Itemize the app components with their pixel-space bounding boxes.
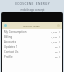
button[interactable]: Contact Us	[2, 49, 62, 54]
staticText: mobile app concept	[20, 8, 45, 12]
staticText: ECOSCENE ENERGY	[15, 2, 50, 6]
staticText: 56	[55, 45, 58, 48]
staticText: Accounts	[4, 40, 16, 44]
staticText: Monthly usage	[23, 24, 40, 27]
staticText: Updates 1	[4, 45, 18, 49]
staticText: My Consumption	[4, 30, 27, 34]
staticText: Contact Us	[4, 50, 19, 54]
staticText: 1,234	[51, 40, 58, 43]
staticText: Profile	[4, 55, 13, 59]
staticText: 1,234	[51, 30, 58, 33]
button[interactable]: Updates 1	[2, 44, 62, 49]
button[interactable]: Profile	[2, 54, 62, 59]
button[interactable]: Billing	[2, 34, 62, 39]
button[interactable]: Accounts	[2, 39, 62, 44]
staticText: 56	[55, 55, 58, 58]
staticText: Billing	[4, 35, 13, 39]
staticText: 56	[55, 50, 58, 53]
button[interactable]: My Consumption	[2, 29, 62, 34]
staticText: 1,234	[51, 35, 58, 38]
